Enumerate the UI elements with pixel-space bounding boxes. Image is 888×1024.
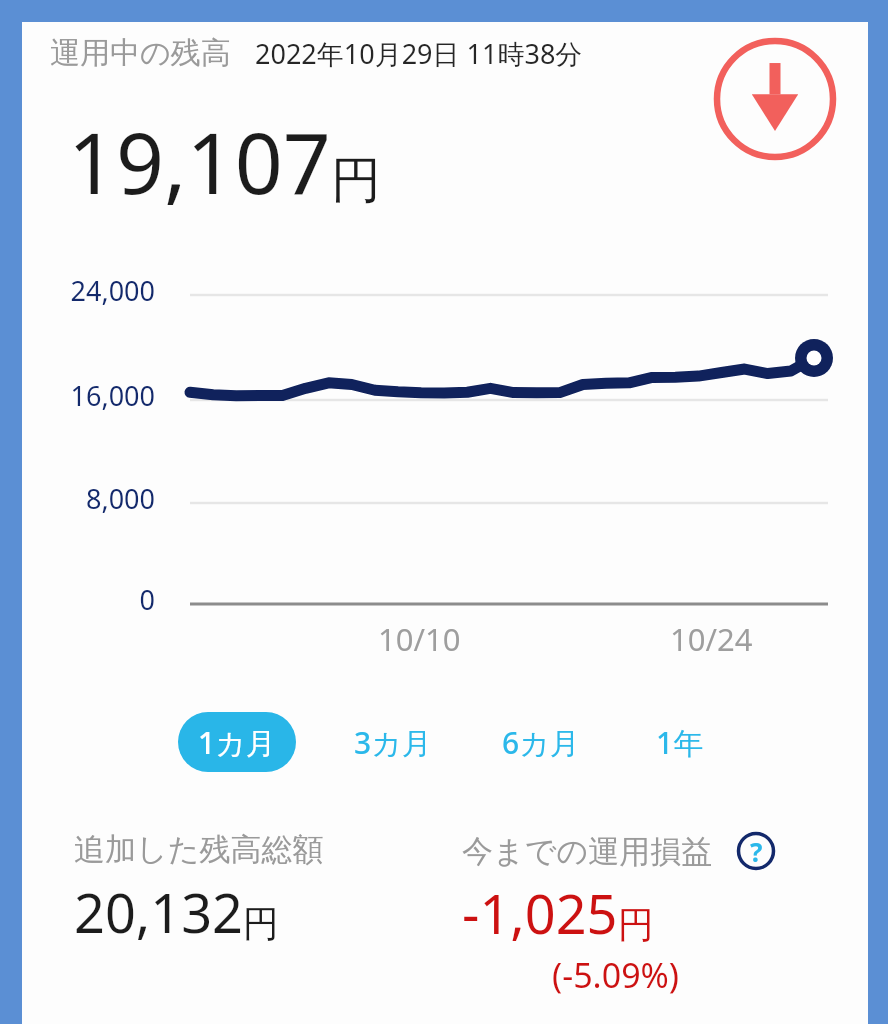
button[interactable]: 1年: [650, 712, 710, 772]
staticText: 20,132: [74, 875, 243, 949]
staticText: -1,025: [462, 876, 618, 950]
button[interactable]: 1カ月: [178, 712, 296, 772]
staticText: 10/10: [378, 618, 461, 660]
staticText: 10/24: [670, 618, 753, 660]
staticText: 6カ月: [502, 722, 580, 763]
staticText: 3カ月: [354, 722, 432, 763]
button[interactable]: 6カ月: [496, 712, 586, 772]
staticText: 今までの運用損益: [462, 832, 713, 871]
staticText: 2022年10月29日 11時38分: [255, 35, 583, 72]
staticText: 0: [139, 581, 155, 615]
staticText: (-5.09%): [552, 952, 680, 998]
staticText: 1カ月: [198, 722, 276, 763]
staticText: 円: [618, 902, 654, 947]
staticText: 19,107: [68, 104, 331, 218]
staticText: ?: [750, 834, 763, 869]
staticText: 24,000: [70, 272, 155, 306]
staticText: 1年: [656, 722, 704, 763]
staticText: 16,000: [70, 377, 155, 411]
staticText: 円: [331, 149, 381, 212]
button[interactable]: 残高が減少: [713, 37, 837, 161]
button[interactable]: 3カ月: [348, 712, 438, 772]
staticText: 円: [243, 901, 279, 946]
staticText: 8,000: [85, 480, 155, 514]
staticText: 運用中の残高: [50, 34, 231, 72]
staticText: 追加した残高総額: [74, 830, 324, 869]
button[interactable]: ヘルプ: [735, 830, 777, 872]
